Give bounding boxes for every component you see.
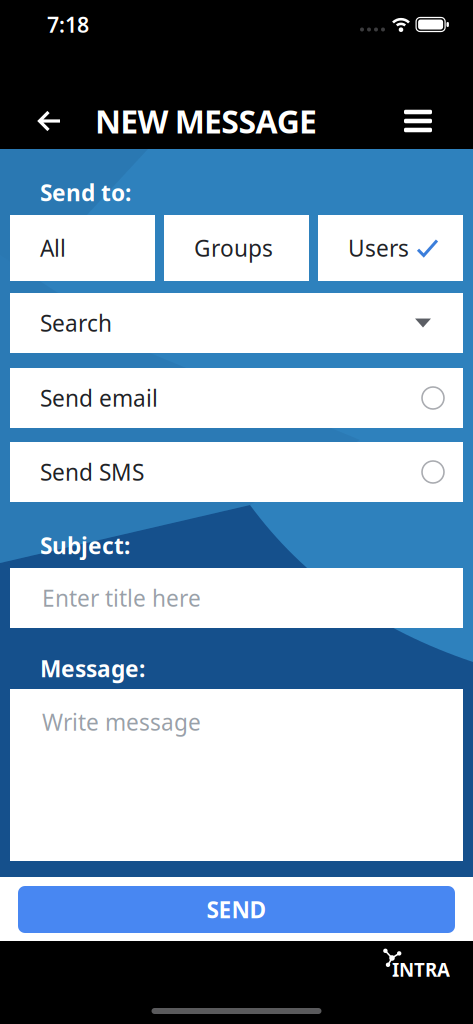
staticText: Message: [40,653,145,683]
staticText: Users [348,233,409,263]
staticText: Write message [42,707,201,737]
button[interactable]: Enter title here [10,568,463,628]
button[interactable]: Menu [404,110,473,132]
staticText: NEW MESSAGE [95,100,317,142]
staticText: Subject: [40,530,130,560]
button[interactable]: Users [318,215,463,281]
staticText: Send email [40,383,158,413]
staticText: SEND [206,894,266,924]
staticText: All [40,233,66,263]
button[interactable]: All [10,215,155,281]
staticText: Enter title here [42,583,201,613]
button[interactable]: SEND [18,886,455,933]
staticText: Search [40,308,112,338]
staticText: 7:18 [47,10,89,39]
staticText: Groups [194,233,273,263]
staticText: INTRA [392,957,450,982]
button[interactable]: Send SMS [10,442,463,502]
button[interactable]: Search [10,293,463,353]
staticText: Send to: [40,177,131,207]
button[interactable]: Back [0,110,61,132]
button[interactable]: Send email [10,368,463,428]
button[interactable]: Write message [10,689,463,861]
staticText: Send SMS [40,457,144,487]
button[interactable]: Groups [164,215,309,281]
